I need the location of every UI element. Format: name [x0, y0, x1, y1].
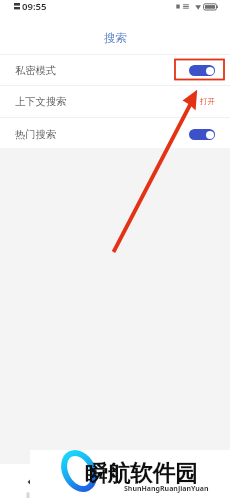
- staticText: 打开: [200, 97, 216, 107]
- staticText: 瞬航软件园: [85, 459, 198, 487]
- staticText: 热门搜索: [15, 128, 57, 141]
- staticText: 上下文搜索: [15, 95, 67, 108]
- button[interactable]: Toggle: [189, 129, 215, 140]
- staticText: 09:55: [22, 0, 47, 13]
- button[interactable]: Toggle: [189, 65, 215, 76]
- staticText: ShunHangRuanJianYuan: [124, 484, 209, 494]
- button[interactable]: Back: [20, 468, 40, 488]
- button[interactable]: 热门搜索: [0, 117, 230, 150]
- staticText: 私密模式: [15, 64, 57, 77]
- staticText: 搜索: [104, 31, 127, 45]
- button[interactable]: 私密模式: [0, 54, 230, 85]
- button[interactable]: 上下文搜索: [0, 85, 230, 117]
